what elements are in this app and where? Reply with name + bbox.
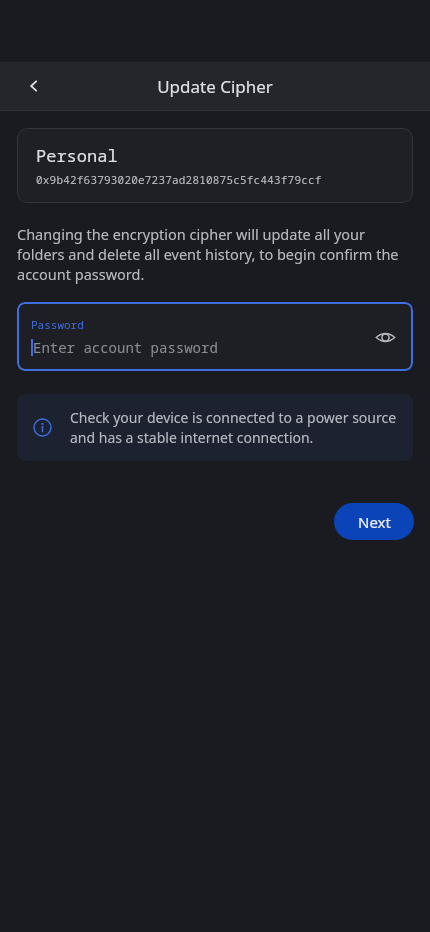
staticText: Next <box>358 512 391 532</box>
button[interactable]: Password <box>17 302 413 371</box>
staticText: Update Cipher <box>157 75 273 98</box>
staticText: Password <box>31 317 84 332</box>
staticText: Changing the encryption cipher will upda… <box>17 224 413 284</box>
button[interactable]: Back <box>14 66 54 106</box>
button[interactable]: Next <box>334 503 414 540</box>
button[interactable]: Personal <box>17 128 413 203</box>
staticText: Personal <box>36 144 118 167</box>
button[interactable]: Check your device is connected to a powe… <box>17 394 413 461</box>
staticText: 0x9b42f63793020e7237ad2810875c5fc443f79c… <box>36 172 322 187</box>
staticText: Enter account password <box>33 338 218 357</box>
button[interactable]: Show password <box>365 317 405 357</box>
staticText: Check your device is connected to a powe… <box>70 408 397 447</box>
